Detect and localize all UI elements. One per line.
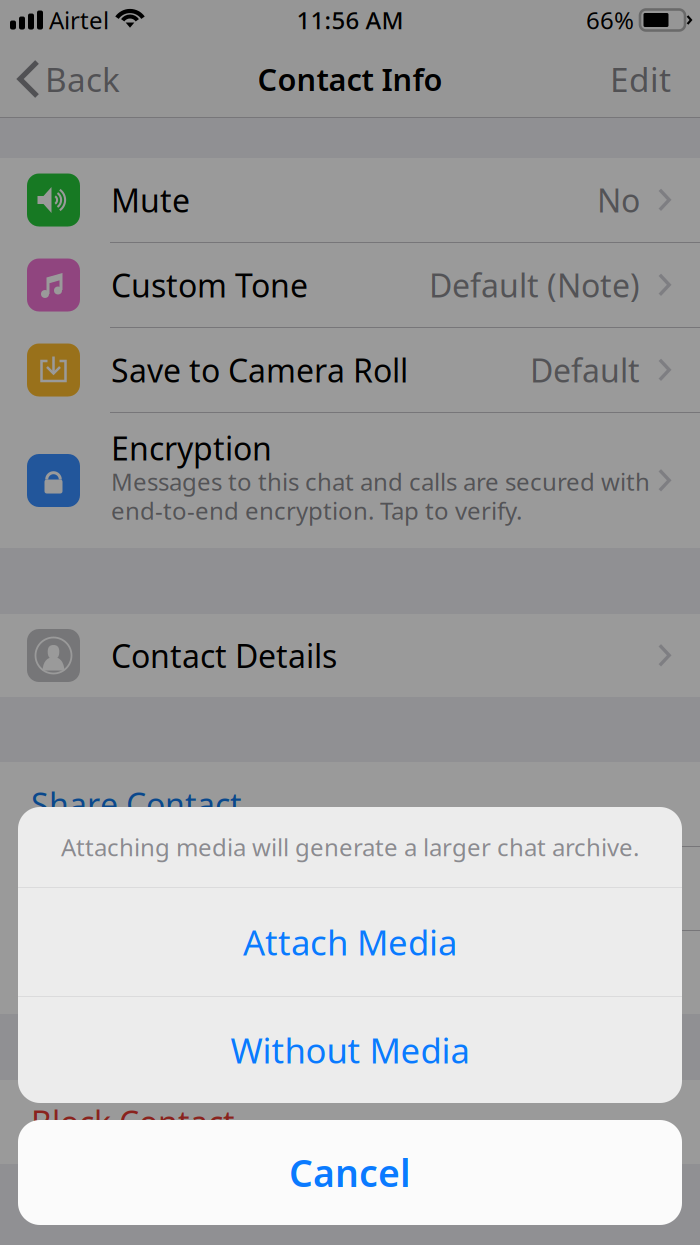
staticText: 11:56 AM [296,4,403,36]
staticText: Encryption [111,427,272,469]
button[interactable]: Block Contact [0,1080,700,1164]
button[interactable]: Contact Details [0,614,700,697]
staticText: Messages to this chat and calls are secu… [111,466,650,497]
button[interactable]: Custom Tone [0,243,700,327]
staticText: Edit [610,57,671,101]
button[interactable]: Clear Chat [0,931,700,1014]
staticText: Without Media [230,1027,469,1073]
staticText: Attaching media will generate a larger c… [61,831,639,863]
button[interactable]: Share Contact [0,762,700,846]
staticText: Custom Tone [111,264,308,306]
button[interactable]: Mute [0,158,700,242]
staticText: Cancel [289,1148,411,1197]
staticText: Attach Media [243,919,457,965]
button[interactable]: Cancel [18,1120,682,1225]
staticText: Contact Info [257,59,442,99]
button[interactable]: Encryption [0,413,700,548]
staticText: Contact Details [111,634,337,677]
button[interactable]: Export Chat [0,847,700,930]
staticText: No [597,179,640,221]
staticText: Mute [111,179,190,221]
staticText: Block Contact [31,1101,235,1143]
staticText: Default [530,349,640,391]
button[interactable]: Attach Media [18,888,682,996]
staticText: Airtel [49,4,109,36]
staticText: Back [45,57,120,101]
button[interactable]: Save to Camera Roll [0,328,700,412]
staticText: Save to Camera Roll [111,349,408,391]
button[interactable]: Edit [610,45,700,113]
staticText: end-to-end encryption. Tap to verify. [111,495,522,526]
staticText: 66% [586,4,634,36]
staticText: Default (Note) [429,264,640,306]
staticText: Share Contact [31,783,242,825]
button[interactable]: Without Media [18,997,682,1103]
button[interactable]: Back [0,45,120,113]
